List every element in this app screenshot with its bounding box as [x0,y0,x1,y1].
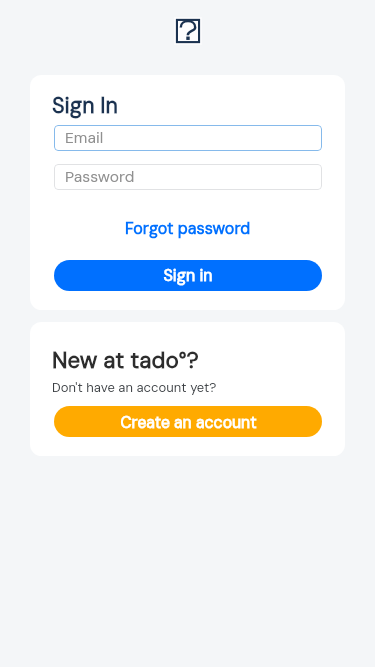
button[interactable]: Sign in [54,260,322,291]
staticText: Password [65,167,135,187]
staticText: New at tado°? [52,346,199,375]
button[interactable]: Email [54,125,322,151]
button[interactable]: Create an account [54,406,322,437]
button[interactable]: Forgot password [30,215,345,241]
staticText: Sign in [163,265,213,286]
button[interactable]: Password [54,164,322,190]
staticText: Sign In [52,92,118,120]
staticText: Don't have an account yet? [52,379,217,396]
staticText: Forgot password [125,218,251,239]
staticText: Create an account [120,412,257,432]
staticText: Email [65,128,104,148]
other: tado logo [174,17,202,45]
